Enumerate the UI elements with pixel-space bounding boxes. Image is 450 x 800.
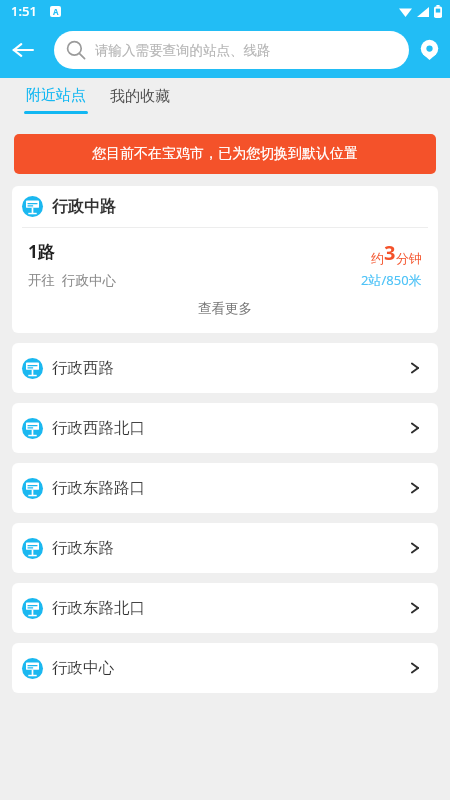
staticText: 我的收藏 <box>110 87 170 106</box>
staticText: 行政中心 <box>52 658 408 678</box>
staticText: 1路 <box>28 240 55 263</box>
button[interactable]: 附近站点 <box>24 78 88 122</box>
button[interactable]: 行政东路北口 <box>12 583 438 633</box>
staticText: A <box>53 6 59 17</box>
staticText: 行政东路路口 <box>52 478 408 498</box>
staticText: 3 <box>384 239 396 266</box>
button[interactable]: 行政东路路口 <box>12 463 438 513</box>
button[interactable]: Back <box>0 27 46 73</box>
staticText: 行政西路北口 <box>52 418 408 438</box>
staticText: 约 <box>371 250 384 266</box>
button[interactable]: Location <box>408 29 450 71</box>
button[interactable]: 我的收藏 <box>110 78 170 122</box>
staticText: 行政东路北口 <box>52 598 408 618</box>
staticText: 分钟 <box>396 250 422 266</box>
staticText: 行政中路 <box>52 197 116 217</box>
button[interactable]: 行政西路北口 <box>12 403 438 453</box>
staticText: 查看更多 <box>198 300 252 317</box>
staticText: 请输入需要查询的站点、线路 <box>95 42 271 59</box>
staticText: 附近站点 <box>26 86 86 105</box>
button[interactable]: 查看更多 <box>12 300 438 333</box>
staticText: 您目前不在宝鸡市，已为您切换到默认位置 <box>92 145 358 163</box>
button[interactable]: 请输入需要查询的站点、线路 <box>54 31 409 69</box>
staticText: 开往 行政中心 <box>28 271 117 289</box>
button[interactable]: 您目前不在宝鸡市，已为您切换到默认位置 <box>14 134 436 174</box>
button[interactable]: 行政西路 <box>12 343 438 393</box>
staticText: 行政西路 <box>52 358 408 378</box>
staticText: 1:51 <box>11 2 37 20</box>
button[interactable]: 行政中路 <box>12 186 438 227</box>
staticText: 行政东路 <box>52 538 408 558</box>
staticText: 2站/850米 <box>361 271 422 289</box>
button[interactable]: 行政中心 <box>12 643 438 693</box>
button[interactable]: 1路 <box>12 228 438 300</box>
button[interactable]: 行政东路 <box>12 523 438 573</box>
